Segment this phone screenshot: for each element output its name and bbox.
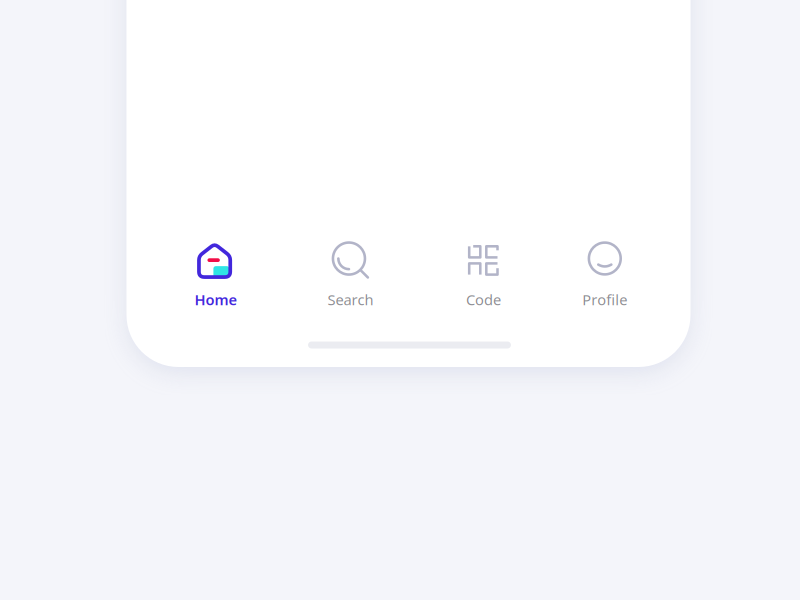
button[interactable]: Profile <box>549 243 660 303</box>
button[interactable]: Code <box>418 243 549 303</box>
staticText: Home <box>194 290 237 309</box>
button[interactable]: Search <box>283 243 418 303</box>
button[interactable]: Home <box>149 243 283 303</box>
staticText: Code <box>466 290 501 309</box>
staticText: Search <box>327 290 373 309</box>
staticText: Profile <box>582 290 627 309</box>
